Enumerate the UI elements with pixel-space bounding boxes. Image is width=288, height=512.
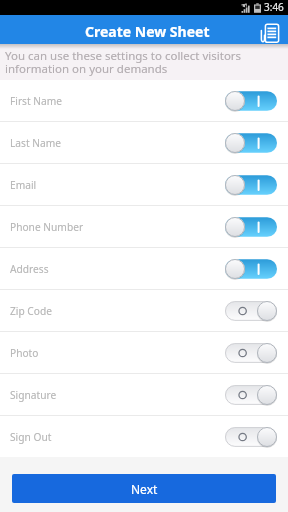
button[interactable]: On (225, 133, 277, 153)
button[interactable]: Last Name (0, 122, 288, 164)
staticText: Phone Number (10, 220, 84, 234)
staticText: Last Name (10, 136, 61, 150)
staticText: Address (10, 262, 49, 276)
button[interactable]: Zip Code (0, 290, 288, 332)
button[interactable]: Sign Out (0, 416, 288, 457)
button[interactable]: Off (225, 427, 277, 447)
button[interactable]: Off (225, 385, 277, 405)
button[interactable]: On (225, 91, 277, 111)
button[interactable]: Off (225, 301, 277, 321)
button[interactable]: First Name (0, 80, 288, 122)
staticText: Zip Code (10, 304, 52, 318)
staticText: Create New Sheet (85, 22, 210, 41)
button[interactable]: Next (12, 474, 276, 503)
button[interactable]: Signature (0, 374, 288, 416)
button[interactable]: Address (0, 248, 288, 290)
staticText: Email (10, 178, 37, 192)
button[interactable]: On (225, 217, 277, 237)
button[interactable]: Off (225, 343, 277, 363)
staticText: 3:46 (264, 0, 284, 14)
staticText: Photo (10, 346, 39, 360)
button[interactable]: On (225, 259, 277, 279)
staticText: Signature (10, 388, 57, 402)
button[interactable]: Sheets (258, 17, 284, 43)
button[interactable]: Phone Number (0, 206, 288, 248)
staticText: First Name (10, 94, 63, 108)
button[interactable]: Email (0, 164, 288, 206)
staticText: Sign Out (10, 430, 52, 444)
staticText: Next (131, 481, 158, 497)
staticText: You can use these settings to collect vi… (5, 48, 242, 76)
button[interactable]: Photo (0, 332, 288, 374)
button[interactable]: On (225, 175, 277, 195)
